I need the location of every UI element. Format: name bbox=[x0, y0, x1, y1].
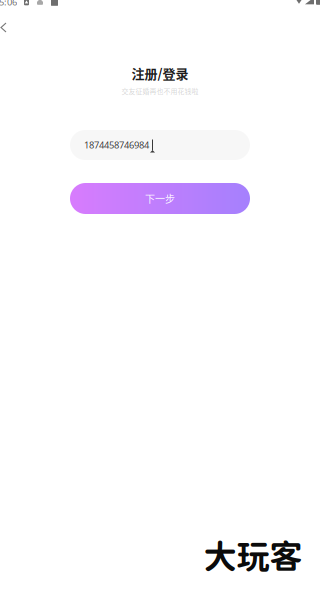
button[interactable]: 下一步 bbox=[70, 183, 250, 214]
staticText: 交友征婚再也不用花钱啦 bbox=[121, 86, 198, 96]
staticText: 大玩客 bbox=[203, 536, 302, 576]
staticText: 注册/登录 bbox=[131, 63, 188, 82]
staticText: 下一步 bbox=[145, 191, 175, 206]
staticText: 1874458746984 bbox=[84, 139, 149, 151]
button[interactable]: 1874458746984 bbox=[70, 130, 250, 160]
staticText: 5:06 bbox=[0, 0, 17, 8]
button[interactable]: Back bbox=[0, 16, 14, 40]
